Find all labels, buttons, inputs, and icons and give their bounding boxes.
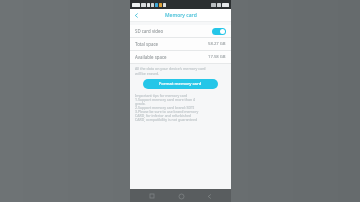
staticText: 17.58 GB xyxy=(208,54,226,60)
staticText: Memory card xyxy=(165,12,197,19)
staticText: Important tips for memory card 1.Support… xyxy=(135,93,226,122)
staticText: 58.27 GB xyxy=(208,41,226,47)
button[interactable]: Back xyxy=(203,190,215,202)
button[interactable]: Format memory card xyxy=(143,79,218,89)
button[interactable]: SD card video xyxy=(130,25,231,37)
button[interactable]: Back xyxy=(130,9,143,22)
button[interactable]: Available space xyxy=(130,51,231,63)
button[interactable]: SD card video toggle xyxy=(211,27,226,35)
staticText: Total space xyxy=(135,41,208,47)
staticText: Format memory card xyxy=(159,81,202,87)
staticText: Available space xyxy=(135,54,208,60)
button[interactable]: Recent apps xyxy=(146,190,158,202)
staticText: SD card video xyxy=(135,28,211,34)
button[interactable]: Total space xyxy=(130,38,231,50)
button[interactable]: Home xyxy=(175,190,187,202)
staticText: All the data on your device's memory car… xyxy=(135,66,226,76)
